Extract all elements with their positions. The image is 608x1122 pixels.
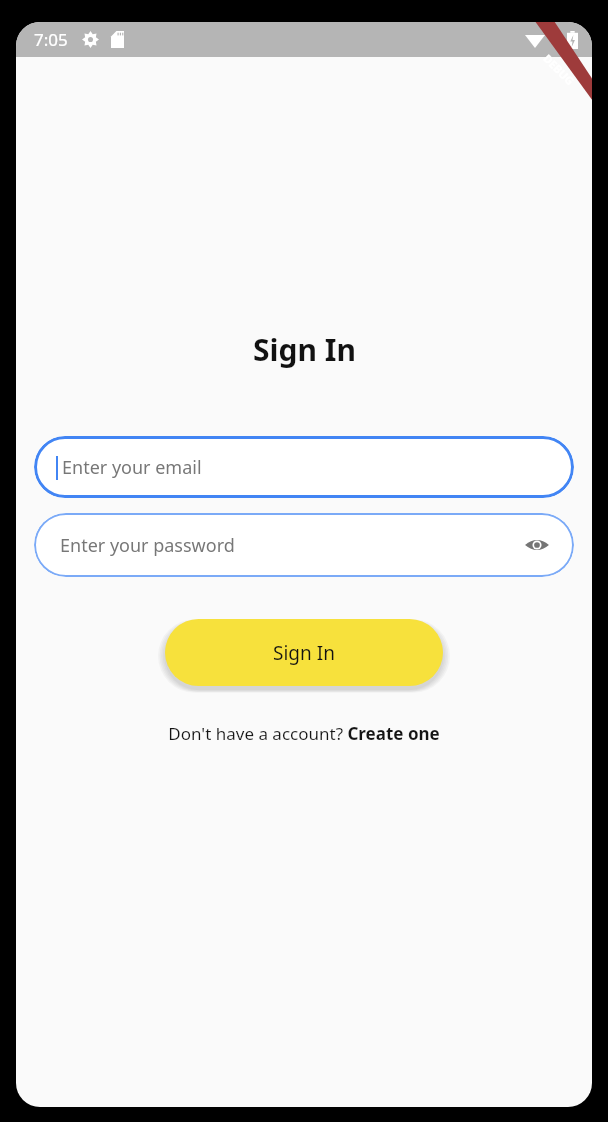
staticText: Enter your password [60,533,235,558]
staticText: Sign In [253,329,356,370]
staticText: Sign In [273,640,335,666]
staticText: 7:05 [34,28,68,51]
button[interactable]: Enter your email [34,436,574,498]
staticText: Enter your email [62,455,202,480]
button[interactable]: Show password [522,530,552,560]
button[interactable]: Enter your password [34,513,574,577]
button[interactable]: Sign In [165,619,443,686]
staticText: Don't have a account? Create one [168,722,440,745]
staticText: DEBUG [540,51,578,88]
button[interactable]: Don't have a account? Create one [160,718,448,749]
